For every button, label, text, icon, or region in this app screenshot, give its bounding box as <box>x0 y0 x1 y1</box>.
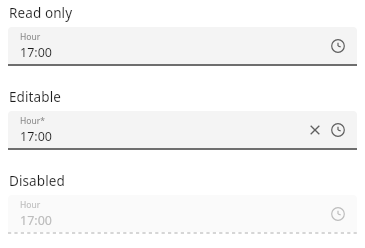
staticText: Disabled <box>9 172 65 190</box>
staticText: Editable <box>9 88 61 106</box>
button: Hour <box>8 195 357 234</box>
staticText: Hour <box>20 199 41 211</box>
button: Pick time <box>328 204 348 224</box>
staticText: Hour <box>20 31 41 43</box>
button[interactable]: Pick time <box>328 120 348 140</box>
staticText: 17:00 <box>20 128 52 145</box>
staticText: Read only <box>9 4 73 22</box>
button[interactable]: Hour <box>8 27 357 66</box>
button[interactable]: Pick time <box>328 36 348 56</box>
staticText: 17:00 <box>20 212 52 229</box>
button[interactable]: Clear <box>305 120 325 140</box>
staticText: 17:00 <box>20 44 52 61</box>
staticText: Hour* <box>20 115 45 127</box>
button[interactable]: Hour* <box>8 111 357 150</box>
